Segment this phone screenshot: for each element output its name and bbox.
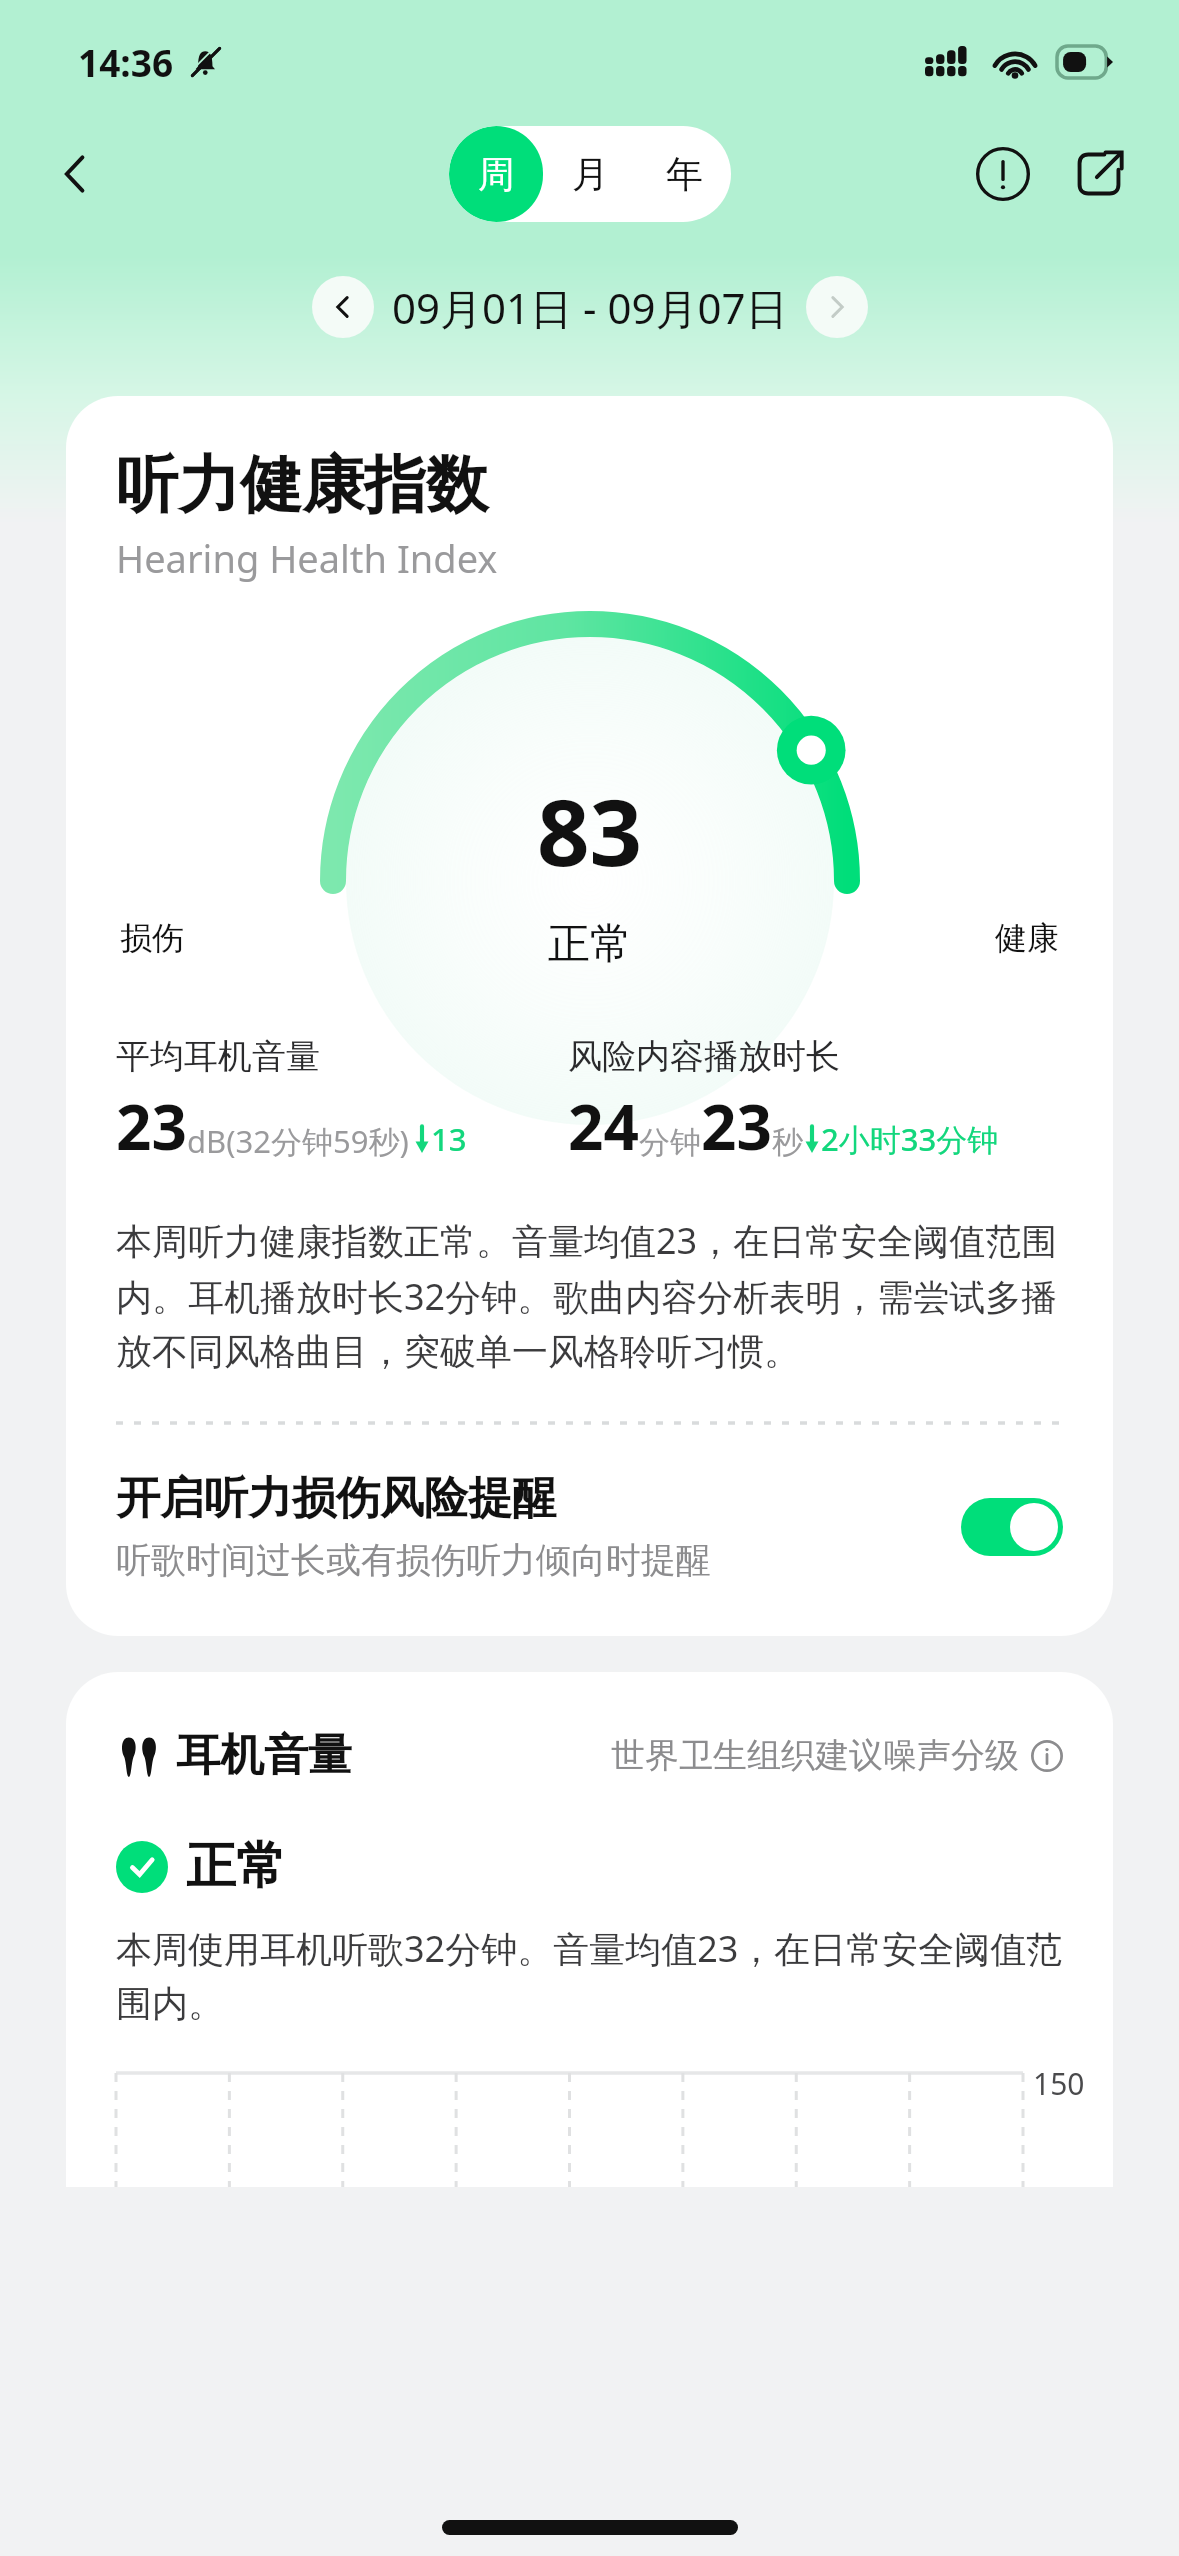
button[interactable]: 年	[637, 126, 731, 222]
staticText: 听歌时间过长或有损伤听力倾向时提醒	[116, 1538, 711, 1582]
button[interactable]: 世界卫生组织建议噪声分级	[611, 1734, 1063, 1777]
staticText: 24	[568, 1084, 639, 1168]
staticText: dB(32分钟59秒)	[187, 1120, 409, 1162]
staticText: 损伤	[120, 918, 414, 958]
button[interactable]: Share	[1057, 132, 1141, 216]
staticText: 13	[431, 1118, 467, 1160]
staticText: Hearing Health Index	[116, 532, 498, 584]
staticText: 150	[1033, 2063, 1085, 2104]
staticText: 健康	[766, 918, 1059, 958]
button[interactable]: Next period	[806, 276, 868, 338]
button[interactable]: Previous period	[312, 276, 374, 338]
staticText: 年	[666, 151, 703, 198]
staticText: 09月01日 - 09月07日	[392, 279, 788, 336]
staticText: 正常	[186, 1835, 286, 1898]
staticText: 耳机音量	[176, 1728, 352, 1783]
button[interactable]: Back	[34, 132, 118, 216]
staticText: 世界卫生组织建议噪声分级	[611, 1734, 1019, 1777]
staticText: 正常	[414, 918, 766, 971]
staticText: 平均耳机音量	[116, 1035, 320, 1078]
staticText: 14:36	[78, 37, 174, 87]
staticText: 分钟	[639, 1123, 701, 1162]
staticText: 开启听力损伤风险提醒	[116, 1471, 556, 1526]
staticText: 秒	[772, 1123, 803, 1162]
button[interactable]: Info	[961, 132, 1045, 216]
staticText: 23	[116, 1084, 187, 1168]
button[interactable]: 开启听力损伤风险提醒	[116, 1471, 1063, 1582]
staticText: 月	[572, 151, 609, 198]
staticText: 2小时33分钟	[821, 1118, 999, 1160]
staticText: 风险内容播放时长	[568, 1035, 840, 1078]
staticText: 23	[701, 1084, 772, 1168]
button[interactable]: 周	[449, 126, 543, 222]
staticText: 本周听力健康指数正常。音量均值23，在日常安全阈值范围内。耳机播放时长32分钟。…	[116, 1216, 1063, 1375]
button[interactable]: 月	[543, 126, 637, 222]
staticText: 83	[537, 768, 643, 893]
staticText: 周	[478, 151, 515, 198]
staticText: 本周使用耳机听歌32分钟。音量均值23，在日常安全阈值范围内。	[116, 1924, 1063, 2027]
staticText: 听力健康指数	[116, 446, 488, 524]
